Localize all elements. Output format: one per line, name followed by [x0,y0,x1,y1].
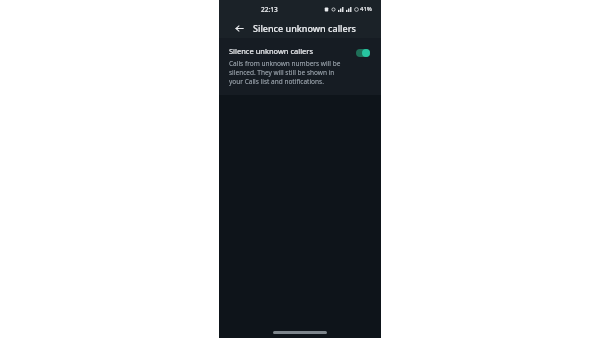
staticText: Silence unknown callers [229,46,314,56]
button[interactable]: Silence unknown callers [219,38,381,95]
staticText: 41% [360,5,372,13]
staticText: 22:13 [261,5,278,14]
staticText: Silence unknown callers [253,22,356,34]
staticText: Calls from unknown numbers will be silen… [229,59,348,86]
button[interactable]: Silence unknown callers toggle [354,47,371,59]
button[interactable]: Back [232,21,246,35]
